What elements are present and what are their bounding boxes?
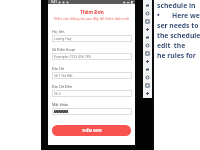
staticText: Địa Chỉ Đến — [52, 84, 72, 89]
button[interactable]: Tool action 9 — [143, 65, 152, 73]
staticText: Thêm Đơn — [80, 9, 104, 15]
button[interactable]: THÊM ĐƠN — [52, 125, 131, 136]
staticText: Số Điện thoại — [52, 47, 75, 52]
button[interactable]: Tool action 8 — [143, 57, 152, 65]
staticText: Lương Huy — [54, 36, 72, 41]
button[interactable]: Số 1 Hà Nội — [52, 72, 132, 79]
button[interactable]: Password field — [52, 108, 132, 115]
button[interactable]: Tool action 11 — [143, 81, 152, 89]
staticText: Địa Chỉ — [52, 66, 65, 71]
button[interactable]: Tool action 3 — [143, 17, 152, 25]
staticText: • Here we — [157, 11, 200, 20]
button[interactable]: Tool action 2 — [143, 9, 152, 17]
button[interactable]: Tool action 7 — [143, 49, 152, 57]
staticText: Họ, tên — [52, 29, 65, 34]
staticText: Số 1 Hà Nội — [54, 73, 73, 78]
button[interactable]: Lương Huy — [52, 35, 132, 42]
staticText: edit the rules — [157, 41, 200, 50]
staticText: he rules for tha — [157, 51, 200, 60]
staticText: Số 2 — [54, 91, 61, 96]
staticText: Mật khẩu — [52, 102, 69, 107]
staticText: Example: 0123 456 789 — [54, 54, 91, 59]
staticText: 9:41 — [51, 0, 57, 4]
staticText: Điền các thông tin sau đây để thêm đơn m… — [54, 16, 129, 21]
staticText: schedule in the — [157, 1, 200, 10]
staticText: ser needs to re — [157, 21, 200, 30]
staticText: THÊM ĐƠN — [82, 128, 102, 133]
button[interactable]: Tool action 1 — [143, 1, 152, 9]
button[interactable]: Example: 0123 456 789 — [52, 53, 132, 60]
button[interactable]: Tool action 5 — [143, 33, 152, 41]
button[interactable]: Tool action 10 — [143, 73, 152, 81]
button[interactable]: Số 2 — [52, 90, 132, 97]
button[interactable]: Tool action 12 — [143, 89, 152, 97]
staticText: the schedule, th — [157, 31, 200, 40]
button[interactable]: Tool action 6 — [143, 41, 152, 49]
button[interactable]: Tool action 4 — [143, 25, 152, 33]
